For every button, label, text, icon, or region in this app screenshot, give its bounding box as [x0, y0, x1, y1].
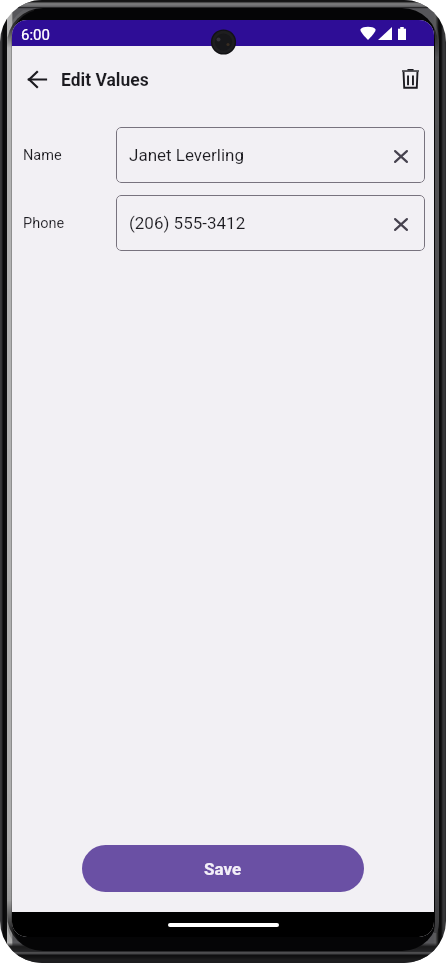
- button[interactable]: Delete: [390, 58, 430, 98]
- staticText: 6:00: [21, 26, 50, 44]
- button[interactable]: Clear: [384, 206, 418, 240]
- staticText: Name: [23, 147, 116, 164]
- staticText: Phone: [23, 215, 116, 232]
- button[interactable]: Janet Leverling: [116, 127, 425, 183]
- staticText: Janet Leverling: [129, 145, 244, 165]
- button[interactable]: Save: [82, 845, 364, 892]
- button[interactable]: Clear: [384, 138, 418, 172]
- button[interactable]: Back: [17, 59, 57, 99]
- staticText: Edit Values: [61, 70, 149, 91]
- staticText: Save: [204, 859, 242, 879]
- button[interactable]: (206) 555-3412: [116, 195, 425, 251]
- staticText: (206) 555-3412: [129, 213, 246, 233]
